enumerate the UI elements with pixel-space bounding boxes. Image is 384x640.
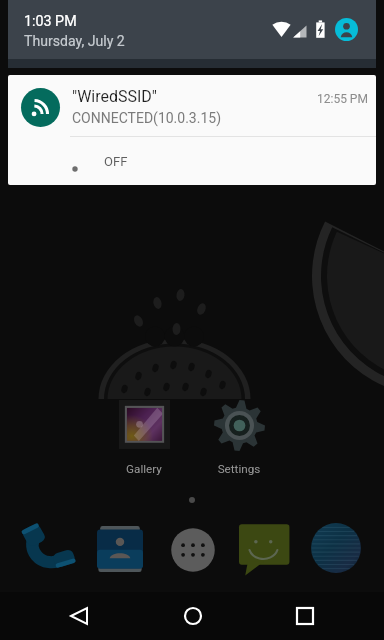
button[interactable]: Browser: [310, 522, 362, 574]
button[interactable]: User profile: [335, 18, 358, 41]
staticText: OFF: [104, 154, 128, 169]
button[interactable]: Home: [169, 594, 217, 638]
button[interactable]: "WiredSSID": [8, 75, 376, 137]
button[interactable]: Messaging: [239, 522, 291, 574]
button[interactable]: Settings: [201, 396, 277, 478]
staticText: Settings: [201, 462, 277, 476]
button[interactable]: Phone: [19, 517, 75, 573]
staticText: Thursday, July 2: [24, 33, 125, 50]
button[interactable]: Apps: [171, 528, 215, 572]
staticText: 1:03 PM: [24, 13, 77, 30]
button[interactable]: Contacts: [97, 526, 143, 572]
button[interactable]: Gallery: [106, 396, 182, 478]
button[interactable]: Back: [55, 594, 103, 638]
staticText: 12:55 PM: [317, 92, 368, 106]
staticText: "WiredSSID": [72, 87, 157, 106]
staticText: Gallery: [106, 462, 182, 476]
staticText: CONNECTED(10.0.3.15): [72, 110, 222, 126]
button[interactable]: OFF: [8, 137, 376, 185]
button[interactable]: Recent apps: [281, 594, 329, 638]
